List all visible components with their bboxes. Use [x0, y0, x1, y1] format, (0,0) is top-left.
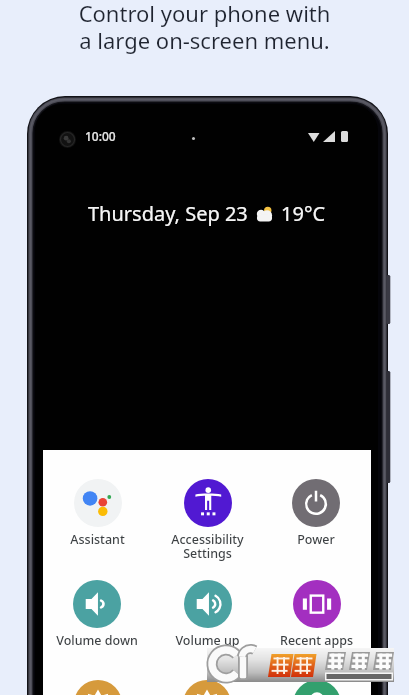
button[interactable]: Volume up: [153, 580, 261, 676]
button[interactable]: Power: [262, 479, 370, 575]
staticText: Volume down: [56, 632, 138, 649]
staticText: Volume up: [175, 632, 240, 649]
button[interactable]: Brightness down: [43, 680, 151, 695]
staticText: 19°C: [281, 200, 326, 227]
staticText: Recent apps: [280, 632, 353, 649]
staticText: Assistant: [70, 531, 125, 548]
button[interactable]: Lock screen: [262, 680, 370, 695]
button[interactable]: Recent apps: [262, 580, 370, 676]
staticText: Accessibility Settings: [171, 531, 244, 562]
staticText: Control your phone with a large on-scree…: [0, 0, 409, 55]
button[interactable]: Accessibility Settings: [153, 479, 261, 575]
button[interactable]: Brightness up: [153, 680, 261, 695]
button[interactable]: Volume down: [43, 580, 151, 676]
staticText: Thursday, Sep 23: [88, 200, 248, 227]
button[interactable]: Assistant: [43, 479, 151, 575]
staticText: Power: [297, 531, 335, 548]
staticText: 10:00: [85, 128, 116, 144]
